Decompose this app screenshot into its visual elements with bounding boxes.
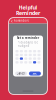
- staticText: Cancel: [17, 72, 26, 75]
- staticText: Pick a day to be nudged: [17, 41, 38, 48]
- staticText: Helpful: [18, 4, 37, 11]
- staticText: Reminder: [16, 9, 40, 17]
- staticText: Set a reminder: [17, 36, 39, 40]
- staticText: ‹: [11, 17, 13, 24]
- button[interactable]: Cancel: [15, 71, 27, 75]
- staticText: Reminders: [14, 19, 29, 22]
- staticText: Save: [32, 72, 37, 75]
- button[interactable]: Save: [29, 71, 41, 75]
